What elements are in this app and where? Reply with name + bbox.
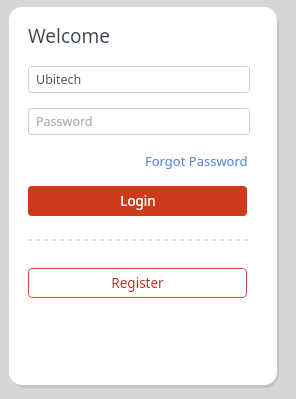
staticText: Forgot Password bbox=[145, 152, 248, 170]
staticText: Register bbox=[111, 274, 164, 292]
button[interactable]: Ubitech bbox=[28, 66, 250, 93]
staticText: Login bbox=[120, 192, 156, 210]
button[interactable]: Login bbox=[28, 186, 247, 216]
button[interactable]: Password bbox=[28, 108, 250, 135]
staticText: Password bbox=[36, 113, 93, 130]
staticText: Welcome bbox=[28, 23, 111, 49]
button[interactable]: Forgot Password bbox=[143, 151, 250, 171]
button[interactable]: Register bbox=[28, 268, 247, 298]
staticText: Ubitech bbox=[36, 71, 82, 88]
